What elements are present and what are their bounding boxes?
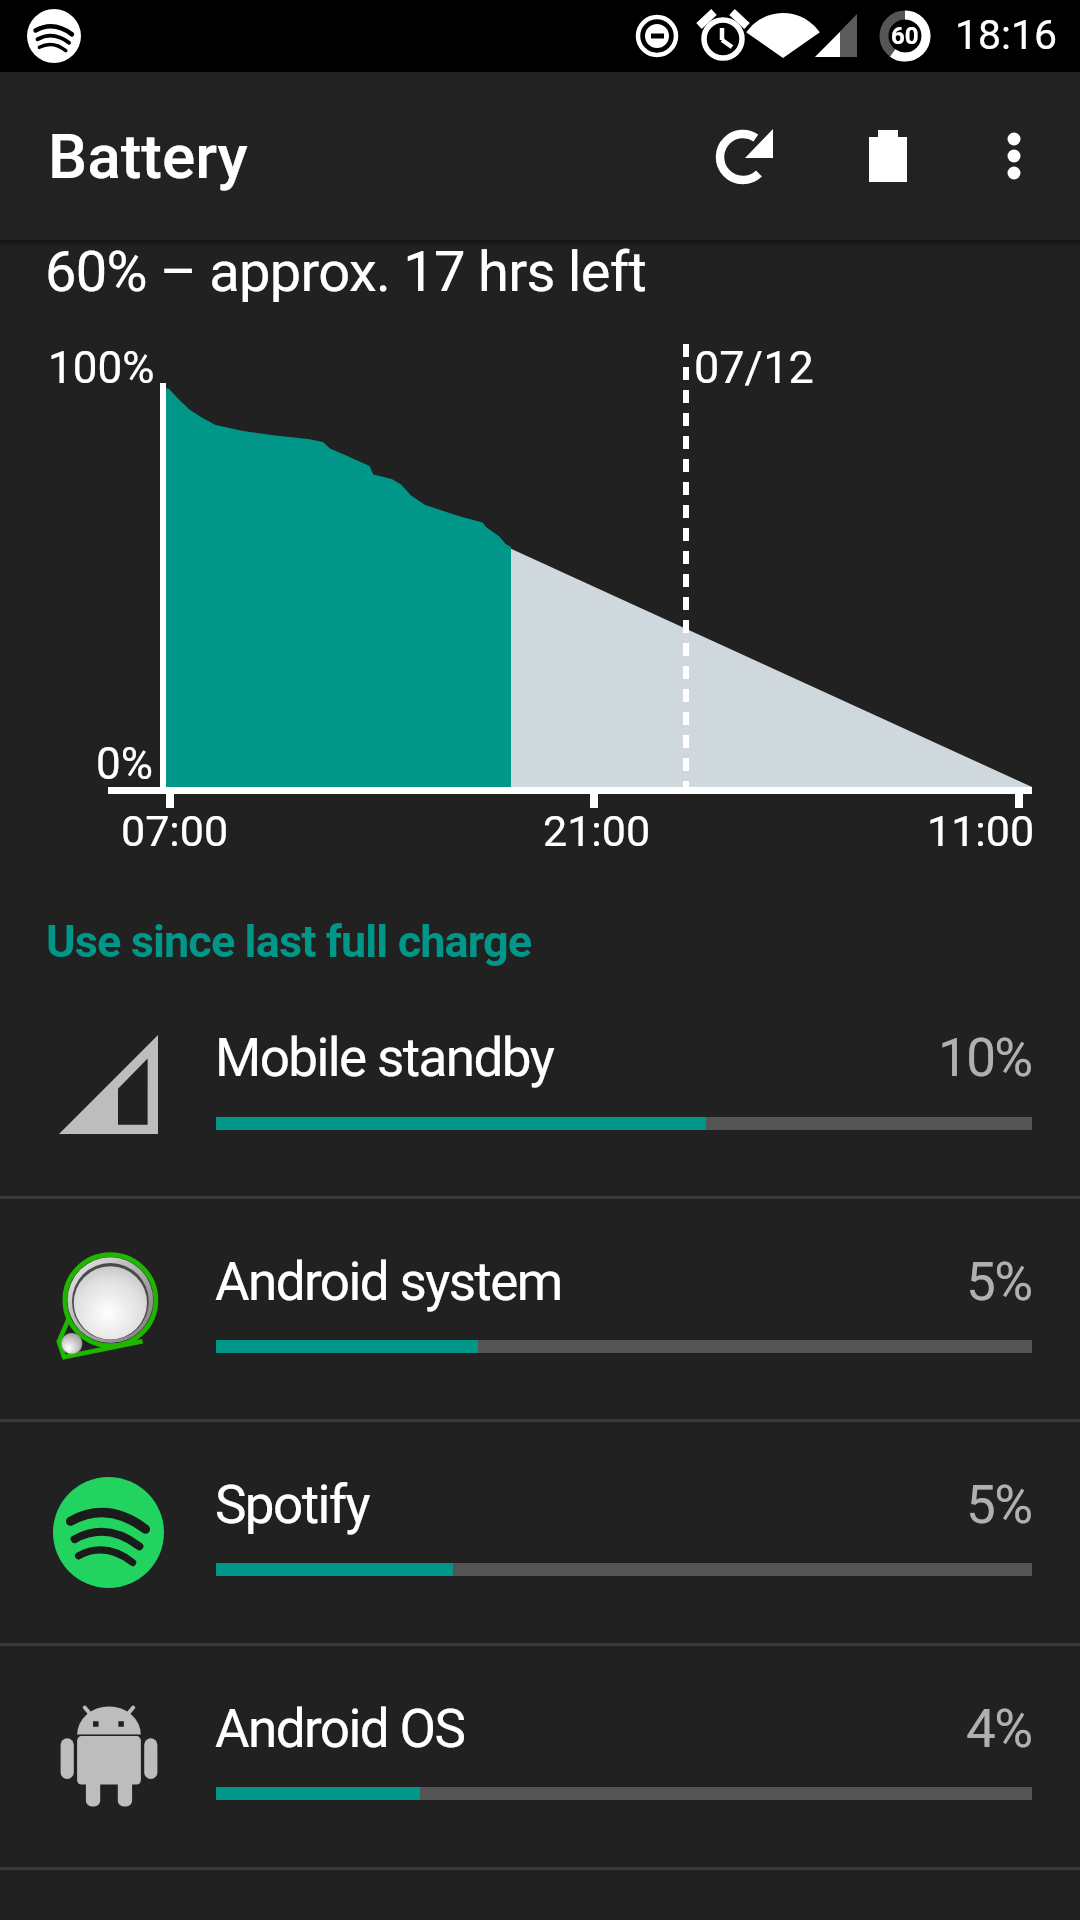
button[interactable]: Spotify bbox=[0, 1422, 1080, 1643]
button[interactable]: Refresh bbox=[697, 72, 793, 240]
staticText: 60% – approx. 17 hrs left bbox=[45, 239, 647, 305]
staticText: Spotify bbox=[215, 1474, 369, 1536]
staticText: Battery bbox=[48, 120, 248, 193]
staticText: Android OS bbox=[215, 1698, 465, 1760]
staticText: 60 bbox=[891, 22, 919, 50]
staticText: 4% bbox=[966, 1698, 1032, 1760]
button[interactable]: Mobile standby bbox=[0, 973, 1080, 1196]
button[interactable]: More options bbox=[966, 72, 1062, 240]
staticText: 5% bbox=[966, 1251, 1032, 1313]
staticText: 18:16 bbox=[955, 11, 1058, 59]
staticText: 11:00 bbox=[927, 806, 1035, 856]
staticText: 07:00 bbox=[121, 806, 229, 856]
staticText: 5% bbox=[966, 1474, 1032, 1536]
button[interactable]: Android system bbox=[0, 1199, 1080, 1419]
button[interactable]: Android OS bbox=[0, 1646, 1080, 1867]
staticText: 0% bbox=[96, 738, 153, 790]
button[interactable]: Battery saver bbox=[840, 72, 936, 240]
staticText: 07/12 bbox=[694, 341, 814, 394]
staticText: 100% bbox=[48, 342, 155, 394]
staticText: 10% bbox=[938, 1027, 1032, 1089]
staticText: 21:00 bbox=[543, 806, 651, 856]
staticText: Mobile standby bbox=[215, 1027, 554, 1089]
staticText: Android system bbox=[215, 1251, 562, 1313]
staticText: Use since last full charge bbox=[46, 915, 532, 968]
